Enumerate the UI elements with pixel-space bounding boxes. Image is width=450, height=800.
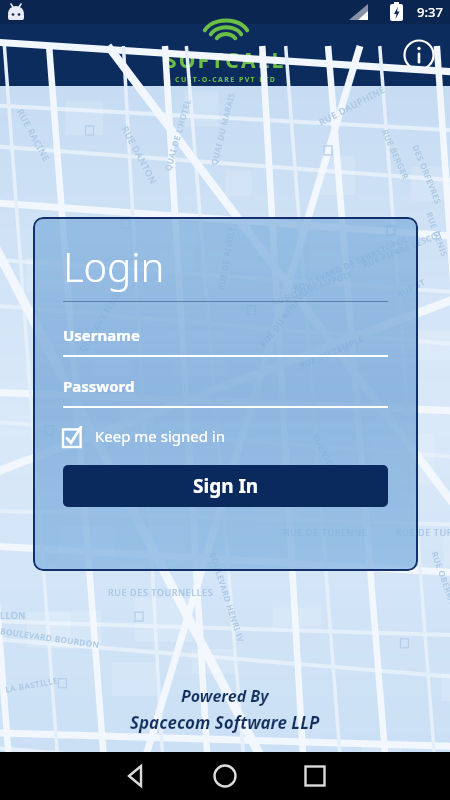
staticText: CUST-O-CARE PVT LTD (175, 75, 277, 85)
staticText: BOULEVARD BOURDON (0, 625, 100, 650)
staticText: Powered By (181, 685, 269, 707)
staticText: RUE BERGER (380, 128, 412, 181)
staticText: QUAI DU MARAIS (208, 91, 237, 166)
button[interactable]: Info (402, 38, 436, 72)
staticText: QUAI DE L'HOTEL (162, 97, 193, 172)
staticText: Password (63, 376, 135, 396)
staticText: LLON (0, 609, 26, 621)
staticText: Spacecom Software LLP (130, 711, 320, 734)
staticText: RUE OBERKAM (430, 550, 450, 613)
staticText: RUE DANTON (120, 124, 160, 186)
staticText: RUE DAUPHINE (316, 82, 387, 128)
staticText: RUE DES TOURNELLES (108, 586, 214, 598)
staticText: Sign In (193, 473, 259, 499)
staticText: RUE VIEILLE DU (310, 432, 352, 497)
button[interactable]: Keep me signed in (63, 423, 225, 449)
staticText: RUE RACINE (15, 107, 53, 163)
staticText: Username (63, 325, 140, 345)
staticText: SOFTCALL (165, 46, 286, 75)
staticText: Login (63, 239, 165, 293)
staticText: RUE PIERRE LESCOT (361, 227, 445, 270)
staticText: RUE DE TURENNE (284, 526, 368, 538)
staticText: 9:37 (417, 3, 443, 21)
staticText: DES ORFEVRES (411, 143, 444, 206)
button[interactable]: Sign In (63, 465, 388, 507)
staticText: BOULEVARD HENRI IV (208, 551, 247, 644)
staticText: RUE DE TUR (396, 526, 450, 538)
staticText: LA BASTILLE (4, 674, 60, 695)
staticText: BOULEVARD DE SEBASTOPOL (291, 233, 410, 294)
staticText: RUE DU RENARD (257, 286, 310, 349)
staticText: Keep me signed in (95, 426, 225, 446)
staticText: RUE DE RIVOLI (215, 226, 237, 291)
staticText: RUE QUINCAMPOIX (271, 268, 354, 307)
staticText: RUE DENIS (424, 210, 450, 258)
staticText: QUAI AUX FLEURS (77, 281, 127, 353)
staticText: RUE ST (395, 276, 427, 299)
staticText: RUE DU TEMPLE (298, 332, 366, 371)
